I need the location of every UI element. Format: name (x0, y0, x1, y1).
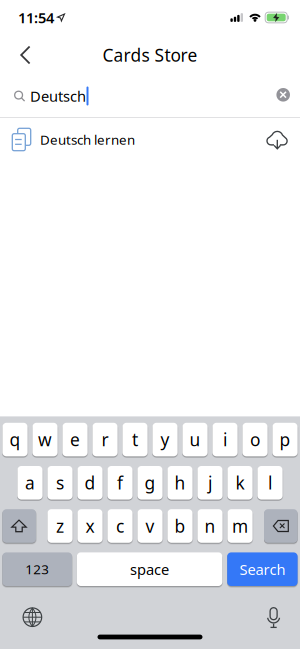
staticText: o (250, 428, 260, 451)
button[interactable]: y (152, 423, 178, 456)
button[interactable]: t (122, 423, 148, 456)
staticText: x (85, 514, 94, 537)
staticText: j (208, 471, 212, 494)
staticText: e (70, 428, 80, 451)
button[interactable]: q (2, 423, 28, 456)
button[interactable]: Download (265, 127, 300, 151)
button[interactable]: w (32, 423, 58, 456)
staticText: h (174, 471, 185, 494)
staticText: t (132, 428, 138, 451)
button[interactable]: d (77, 466, 103, 500)
button[interactable]: o (242, 423, 268, 456)
button[interactable]: b (167, 509, 193, 543)
button[interactable]: h (167, 466, 193, 500)
staticText: q (9, 428, 20, 451)
staticText: Cards Store (102, 43, 197, 66)
staticText: l (268, 471, 272, 494)
staticText: m (232, 514, 248, 537)
staticText: z (56, 514, 64, 537)
staticText: s (56, 471, 64, 494)
button[interactable]: z (47, 509, 73, 543)
staticText: v (145, 514, 154, 537)
staticText: k (235, 471, 244, 494)
staticText: u (189, 428, 200, 451)
button[interactable]: Deutsch lernen (0, 118, 300, 161)
staticText: 11:54 (18, 8, 54, 27)
staticText: y (160, 428, 169, 451)
button[interactable]: Shift (2, 509, 36, 543)
button[interactable]: n (197, 509, 223, 543)
staticText: i (223, 428, 227, 451)
button[interactable]: r (92, 423, 118, 456)
staticText: r (101, 428, 108, 451)
button[interactable]: e (62, 423, 88, 456)
button[interactable]: Next keyboard (23, 608, 42, 627)
button[interactable]: j (197, 466, 223, 500)
button[interactable]: x (77, 509, 103, 543)
button[interactable]: m (227, 509, 253, 543)
button[interactable]: 123 (2, 552, 72, 586)
staticText: f (117, 471, 123, 494)
button[interactable]: f (107, 466, 133, 500)
staticText: g (144, 471, 155, 494)
button[interactable]: i (212, 423, 238, 456)
button[interactable]: space (77, 552, 222, 586)
button[interactable]: g (137, 466, 163, 500)
button[interactable]: Delete (264, 509, 298, 543)
button[interactable]: u (182, 423, 208, 456)
staticText: Search (239, 559, 285, 579)
button[interactable]: s (47, 466, 73, 500)
staticText: a (25, 471, 35, 494)
button[interactable]: p (272, 423, 298, 456)
button[interactable]: Dictate (266, 607, 282, 628)
staticText: 123 (25, 560, 49, 578)
staticText: n (204, 514, 215, 537)
button[interactable]: Clear text (276, 89, 300, 103)
staticText: d (84, 471, 95, 494)
staticText: w (38, 428, 52, 451)
button[interactable]: Search (227, 552, 298, 586)
staticText: p (279, 428, 290, 451)
button[interactable]: c (107, 509, 133, 543)
button[interactable]: k (227, 466, 253, 500)
button[interactable]: v (137, 509, 163, 543)
staticText: b (174, 514, 185, 537)
staticText: c (116, 514, 124, 537)
button[interactable]: l (257, 466, 283, 500)
staticText: Deutsch lernen (40, 131, 135, 148)
staticText: Deutsch (30, 86, 86, 106)
button[interactable]: Back (0, 45, 31, 64)
staticText: space (130, 559, 169, 579)
button[interactable]: a (17, 466, 43, 500)
